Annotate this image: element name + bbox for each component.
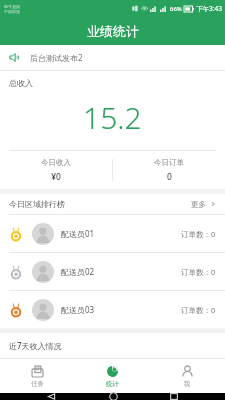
- staticText: 66%: [170, 5, 182, 13]
- staticText: 订单数：0: [181, 305, 216, 315]
- staticText: 我: [184, 380, 191, 388]
- staticText: 配送员02: [61, 266, 95, 277]
- staticText: 配送员03: [61, 304, 95, 315]
- button[interactable]: 我: [150, 359, 225, 393]
- button[interactable]: Back: [40, 393, 62, 400]
- staticText: 后台测试发布2: [30, 52, 83, 63]
- staticText: 总收入: [9, 78, 33, 88]
- staticText: 统计: [106, 380, 119, 388]
- button[interactable]: 统计: [75, 359, 150, 393]
- button[interactable]: 后台测试发布2: [0, 45, 225, 70]
- staticText: 业绩统计: [87, 23, 139, 39]
- button[interactable]: 今日订单: [113, 158, 225, 183]
- staticText: 0: [167, 171, 172, 183]
- button[interactable]: 今日区域排行榜: [0, 194, 225, 214]
- staticText: 下午3:43: [196, 4, 222, 13]
- staticText: 订单数：0: [181, 229, 216, 239]
- staticText: 今日收入: [41, 158, 71, 167]
- staticText: 今日区域排行榜: [9, 199, 65, 209]
- button[interactable]: Medal: [0, 253, 225, 290]
- button[interactable]: 今日收入: [0, 158, 112, 183]
- other: Medal: [9, 227, 23, 241]
- button[interactable]: 任务: [0, 359, 75, 393]
- button[interactable]: Home: [102, 393, 124, 400]
- button[interactable]: Recents: [163, 393, 185, 400]
- staticText: 中国联通: [4, 9, 20, 14]
- button[interactable]: Medal: [0, 215, 225, 252]
- staticText: 今日订单: [154, 158, 184, 167]
- staticText: 任务: [31, 380, 44, 388]
- staticText: 近7天收入情况: [9, 340, 62, 351]
- staticText: 更多: [191, 200, 206, 209]
- other: Medal: [9, 265, 23, 279]
- staticText: 订单数：0: [181, 267, 216, 277]
- staticText: 配送员01: [61, 228, 95, 239]
- staticText: ¥0: [51, 171, 61, 183]
- staticText: 15.2: [83, 97, 142, 138]
- other: Medal: [9, 303, 23, 317]
- staticText: 畅牛易购: [4, 4, 20, 9]
- button[interactable]: Medal: [0, 291, 225, 328]
